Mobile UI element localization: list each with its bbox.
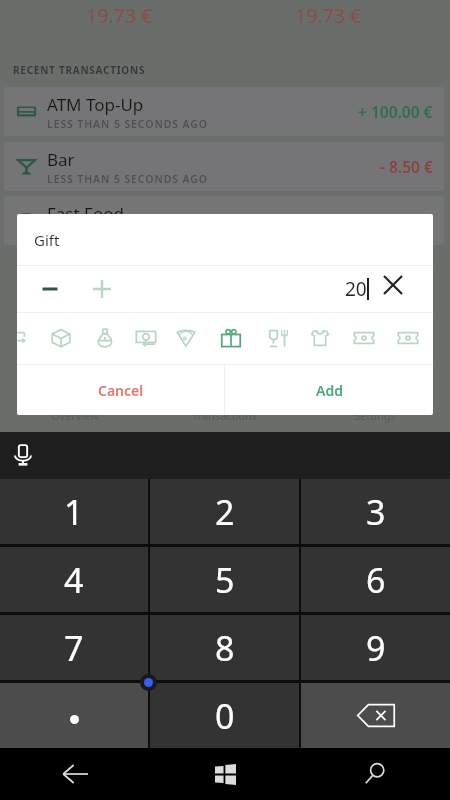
button[interactable]: 8 — [150, 615, 299, 680]
button[interactable]: Category 3 — [94, 327, 116, 349]
staticText: ATM Top-Up — [47, 93, 144, 116]
button[interactable]: Search — [300, 748, 450, 800]
staticText: LESS THAN 5 SECONDS AGO — [47, 117, 208, 131]
staticText: 5 — [215, 557, 235, 603]
staticText: 8 — [215, 625, 235, 671]
button[interactable]: 2 — [150, 479, 299, 544]
button[interactable]: Fast Food — [4, 196, 444, 245]
button[interactable]: Category 2 — [50, 327, 72, 349]
staticText: Settings — [354, 408, 396, 423]
staticText: 4 — [64, 557, 84, 603]
button[interactable]: Settings — [300, 398, 450, 432]
button[interactable]: Category 10 — [397, 327, 419, 349]
staticText: 9 — [366, 625, 386, 671]
staticText: Overview — [51, 408, 99, 423]
button[interactable]: Back — [0, 748, 150, 800]
staticText: Gift — [34, 230, 60, 250]
staticText: 1 — [64, 489, 84, 535]
button[interactable]: Overview — [0, 398, 150, 432]
staticText: 20 — [345, 276, 367, 302]
staticText: 2 — [215, 489, 235, 535]
staticText: + 100.00 € — [358, 101, 433, 122]
staticText: Add — [316, 381, 343, 400]
staticText: Fast Food — [47, 202, 124, 225]
button[interactable]: Backspace — [301, 683, 450, 748]
staticText: LESS THAN 5 SECONDS AGO — [47, 226, 208, 240]
staticText: LESS THAN 5 SECONDS AGO — [47, 172, 208, 186]
button[interactable]: Transactions — [150, 398, 300, 432]
button[interactable]: Category 7 — [268, 327, 290, 349]
button[interactable]: Voice input — [10, 442, 36, 468]
button[interactable]: Increase amount — [79, 266, 125, 312]
button[interactable]: Decimal point — [0, 683, 148, 748]
staticText: 19.73 € — [295, 2, 362, 29]
staticText: 0 — [215, 693, 235, 739]
button[interactable]: Category 6 — [220, 327, 242, 349]
button[interactable]: 9 — [301, 615, 450, 680]
button[interactable]: ATM Top-Up — [4, 87, 444, 136]
button[interactable]: Add — [225, 365, 433, 415]
staticText: Cancel — [98, 381, 144, 400]
button[interactable]: Clear amount — [374, 266, 412, 304]
staticText: RECENT TRANSACTIONS — [13, 63, 146, 77]
button[interactable]: 6 — [301, 547, 450, 612]
button[interactable]: Bar — [4, 142, 444, 191]
button[interactable]: 0 — [150, 683, 299, 748]
button[interactable]: 3 — [301, 479, 450, 544]
button[interactable]: 1 — [0, 479, 148, 544]
button[interactable]: 5 — [150, 547, 299, 612]
staticText: - 12.00 € — [371, 210, 433, 231]
button[interactable]: Category 9 — [353, 327, 375, 349]
staticText: 19.73 € — [86, 2, 153, 29]
button[interactable]: Cancel — [17, 365, 224, 415]
button[interactable]: Category 8 — [309, 327, 331, 349]
staticText: Transactions — [192, 408, 258, 423]
button[interactable]: Category 4 — [135, 327, 157, 349]
staticText: 6 — [366, 557, 386, 603]
button[interactable]: Category 1 — [17, 327, 35, 349]
staticText: - 8.50 € — [380, 156, 433, 177]
button[interactable]: 4 — [0, 547, 148, 612]
staticText: 3 — [366, 489, 386, 535]
button[interactable]: Start — [150, 748, 300, 800]
button[interactable]: 7 — [0, 615, 148, 680]
button[interactable]: Category 5 — [175, 327, 197, 349]
staticText: 7 — [64, 625, 84, 671]
staticText: Bar — [47, 148, 75, 171]
button[interactable]: Decrease amount — [24, 266, 76, 312]
